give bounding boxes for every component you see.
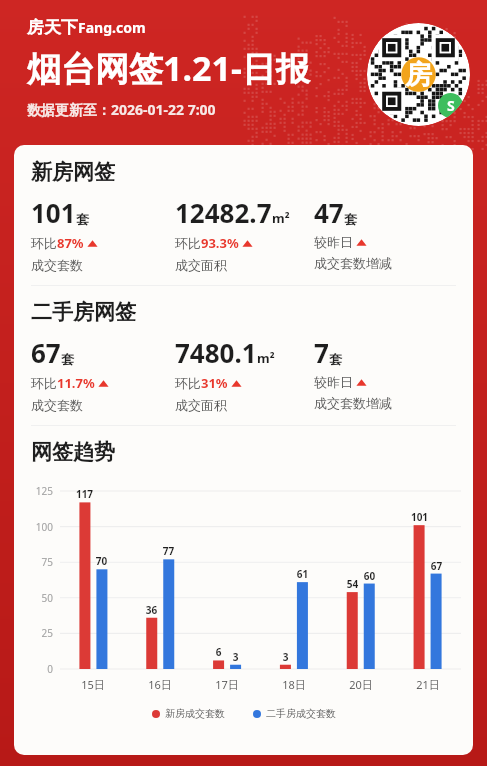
staticText: 125 [22,484,53,498]
staticText: 70 [90,554,113,568]
staticText: m² [272,209,290,227]
button[interactable]: 扫描二维码 [367,23,470,126]
staticText: 3 [274,650,297,664]
staticText: 二手房网签 [31,299,136,325]
staticText: 成交套数 [31,397,83,413]
staticText: 套 [61,351,74,367]
staticText: 100 [22,520,53,534]
button[interactable]: 12482.7 [175,195,314,273]
staticText: 较昨日 [314,374,353,390]
staticText: 16日 [140,677,180,692]
staticText: 87% [57,234,84,252]
staticText: 环比 [31,235,57,251]
staticText: 3 [224,650,247,664]
staticText: 20日 [341,677,381,692]
staticText: 67 [31,335,61,370]
staticText: 成交面积 [175,257,227,273]
staticText: 新房成交套数 [165,707,225,720]
staticText: 21日 [408,677,448,692]
staticText: Fang.com [78,18,146,37]
staticText: 成交套数增减 [314,395,392,411]
staticText: 环比 [175,235,201,251]
staticText: 15日 [73,677,113,692]
staticText: 93.3% [201,234,239,252]
staticText: 60 [358,569,381,583]
button[interactable]: 二手房成交套数 [251,705,338,722]
staticText: 54 [341,577,364,591]
staticText: 成交面积 [175,397,227,413]
staticText: 75 [22,555,53,569]
staticText: 18日 [274,677,314,692]
staticText: 套 [76,211,89,227]
staticText: 套 [329,351,342,367]
staticText: 50 [22,591,53,605]
staticText: 房天下 [27,17,78,38]
staticText: S [447,96,455,115]
staticText: 成交套数增减 [314,255,392,271]
staticText: 套 [344,211,357,227]
staticText: 网签趋势 [31,439,115,465]
staticText: 11.7% [57,374,95,392]
button[interactable]: 7480.1 [175,335,314,413]
staticText: 117 [73,487,96,501]
button[interactable]: 7 [314,335,461,411]
staticText: 较昨日 [314,234,353,250]
staticText: 环比 [175,375,201,391]
staticText: 77 [157,544,180,558]
button[interactable]: 47 [314,195,461,271]
staticText: 房 [405,58,432,92]
staticText: 7 [314,335,329,370]
button[interactable]: 101 [31,195,175,273]
staticText: 101 [408,510,431,524]
staticText: 67 [425,559,448,573]
staticText: 47 [314,195,344,230]
staticText: 17日 [207,677,247,692]
staticText: 6 [207,645,230,659]
staticText: 7480.1 [175,335,257,370]
staticText: 12482.7 [175,195,272,230]
button[interactable]: 新房成交套数 [150,705,227,722]
staticText: 新房网签 [31,159,115,185]
staticText: 31% [201,374,228,392]
staticText: 环比 [31,375,57,391]
staticText: 61 [291,567,314,581]
staticText: 101 [31,195,76,230]
staticText: m² [257,349,275,367]
button[interactable]: 67 [31,335,175,413]
staticText: 二手房成交套数 [266,707,336,720]
staticText: 烟台网签1.21-日报 [27,45,310,91]
staticText: 数据更新至：2026-01-22 7:00 [27,100,216,119]
staticText: 25 [22,626,53,640]
staticText: 36 [140,603,163,617]
staticText: 成交套数 [31,257,83,273]
staticText: 0 [22,662,53,676]
